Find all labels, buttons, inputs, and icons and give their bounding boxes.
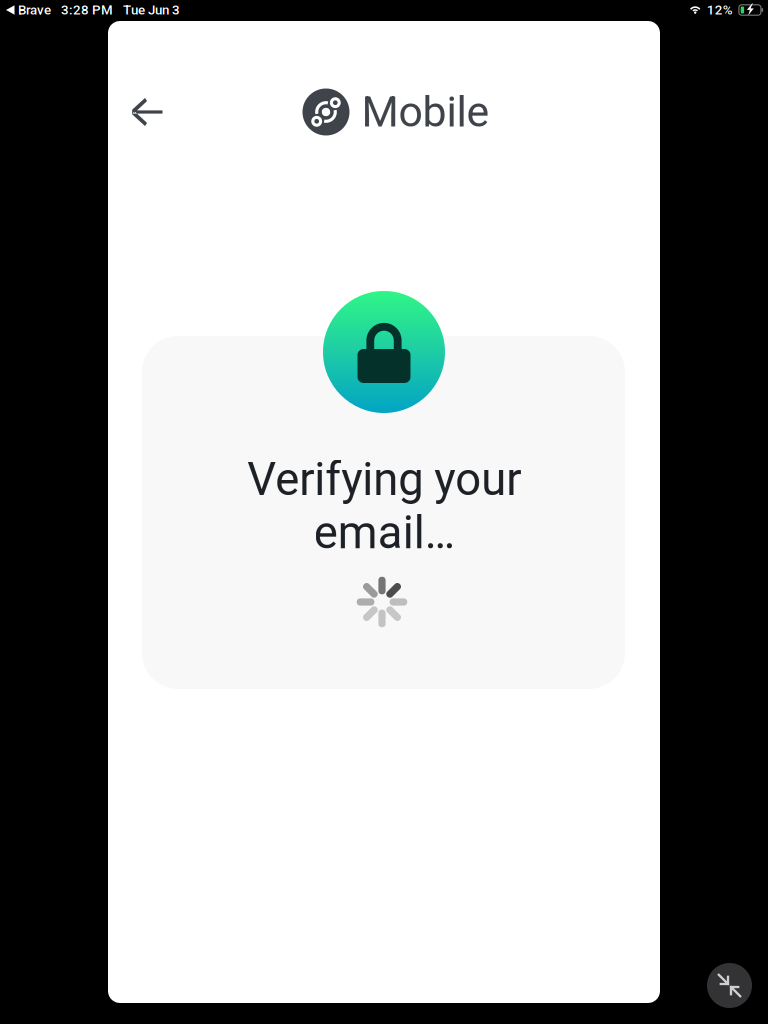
staticText: Mobile (361, 87, 489, 137)
staticText: 12% (707, 2, 733, 18)
staticText: Brave (18, 2, 51, 18)
button[interactable]: Back (119, 84, 175, 140)
staticText: 3:28 PM (61, 2, 113, 18)
staticText: Tue Jun 3 (123, 2, 180, 18)
staticText: email… (313, 506, 454, 559)
button[interactable]: Collapse (707, 963, 752, 1008)
staticText: Verifying your (247, 453, 521, 506)
